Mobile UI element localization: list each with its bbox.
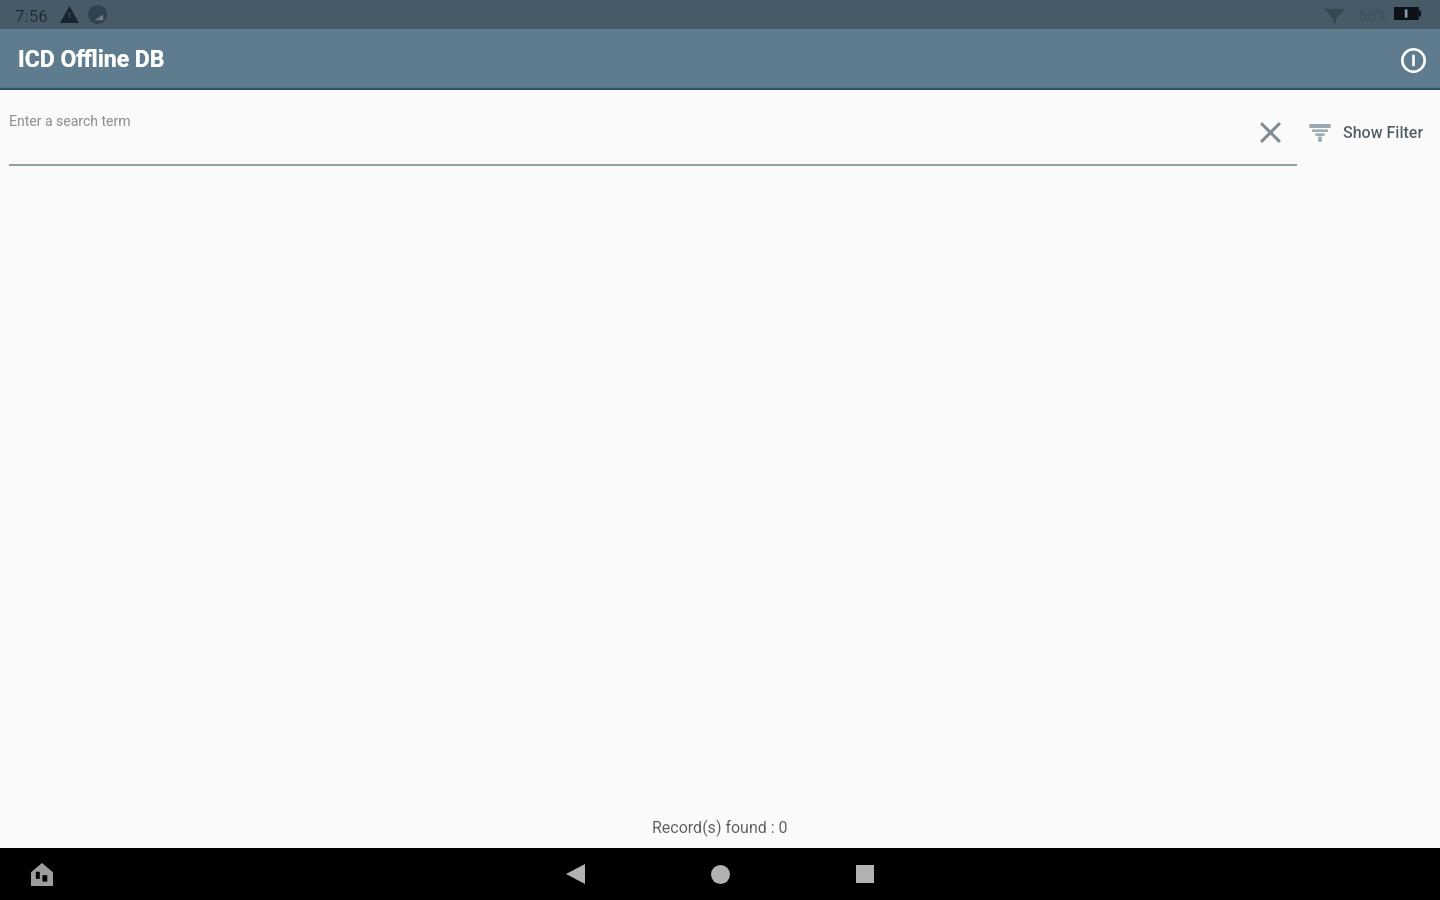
button[interactable]: Home	[696, 850, 744, 898]
staticText: Show Filter	[1343, 123, 1424, 142]
button[interactable]: Show keyboard	[22, 854, 62, 894]
button[interactable]: Show Filter	[1309, 123, 1424, 142]
button[interactable]: Clear search	[1250, 112, 1290, 152]
button[interactable]: Info	[1391, 38, 1435, 82]
staticText: 68%	[1358, 6, 1388, 25]
staticText: Record(s) found : 0	[652, 818, 788, 837]
button[interactable]: Recent apps	[841, 850, 889, 898]
button[interactable]: Back	[551, 850, 599, 898]
staticText: ICD Offline DB	[18, 46, 165, 73]
staticText: 7:56	[15, 6, 48, 26]
staticText: Enter a search term	[9, 113, 131, 129]
